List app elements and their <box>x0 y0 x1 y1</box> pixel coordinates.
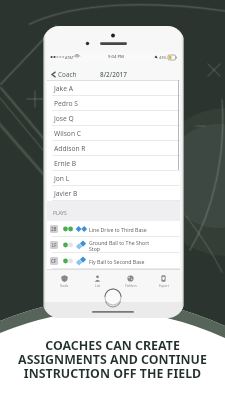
staticText: Ground Ball to The Short Stop <box>89 239 150 252</box>
button[interactable]: Jose Q <box>47 111 180 126</box>
button[interactable]: CF <box>47 253 180 269</box>
staticText: Jose Q <box>54 114 74 123</box>
button[interactable]: List <box>81 270 114 288</box>
staticText: Javier B <box>54 189 78 198</box>
staticText: List <box>95 284 101 288</box>
staticText: Jake A <box>54 84 73 93</box>
button[interactable]: Pedro S <box>47 96 180 111</box>
staticText: Fielders <box>125 284 137 288</box>
button[interactable]: 2B <box>47 221 180 237</box>
button[interactable]: Addison R <box>47 141 180 156</box>
staticText: LF <box>52 242 57 248</box>
button[interactable]: Jake A <box>47 81 180 96</box>
staticText: Addison R <box>54 144 86 153</box>
staticText: 8/2/2017 <box>100 70 127 79</box>
button[interactable]: Javier B <box>47 186 180 201</box>
button[interactable]: Goals <box>47 270 81 288</box>
staticText: Pedro S <box>54 99 79 108</box>
staticText: Fly Ball to Second Base <box>89 258 145 265</box>
button[interactable]: Coach <box>47 68 83 81</box>
button[interactable]: Jon L <box>47 171 180 186</box>
staticText: 9:04 PM <box>108 54 124 60</box>
staticText: 43% <box>159 55 167 60</box>
button[interactable]: Export <box>147 270 180 288</box>
staticText: Ernie B <box>54 159 77 168</box>
button[interactable]: Fielders <box>114 270 147 288</box>
staticText: PLAYS <box>53 210 67 217</box>
staticText: Export <box>159 284 169 288</box>
button[interactable]: LF <box>47 237 180 253</box>
staticText: COACHES CAN CREATE ASSIGNMENTS AND CONTI… <box>18 337 207 382</box>
button[interactable]: Wilson C <box>47 126 180 141</box>
button[interactable]: Ernie B <box>47 156 180 171</box>
staticText: CF <box>51 258 57 264</box>
staticText: Coach <box>58 70 77 79</box>
staticText: Wilson C <box>54 129 82 138</box>
staticText: AT&T <box>65 55 74 60</box>
staticText: Jon L <box>54 174 70 183</box>
staticText: Goals <box>60 284 69 288</box>
staticText: Line Drive to Third Base <box>89 226 147 233</box>
staticText: 2B <box>51 226 57 232</box>
